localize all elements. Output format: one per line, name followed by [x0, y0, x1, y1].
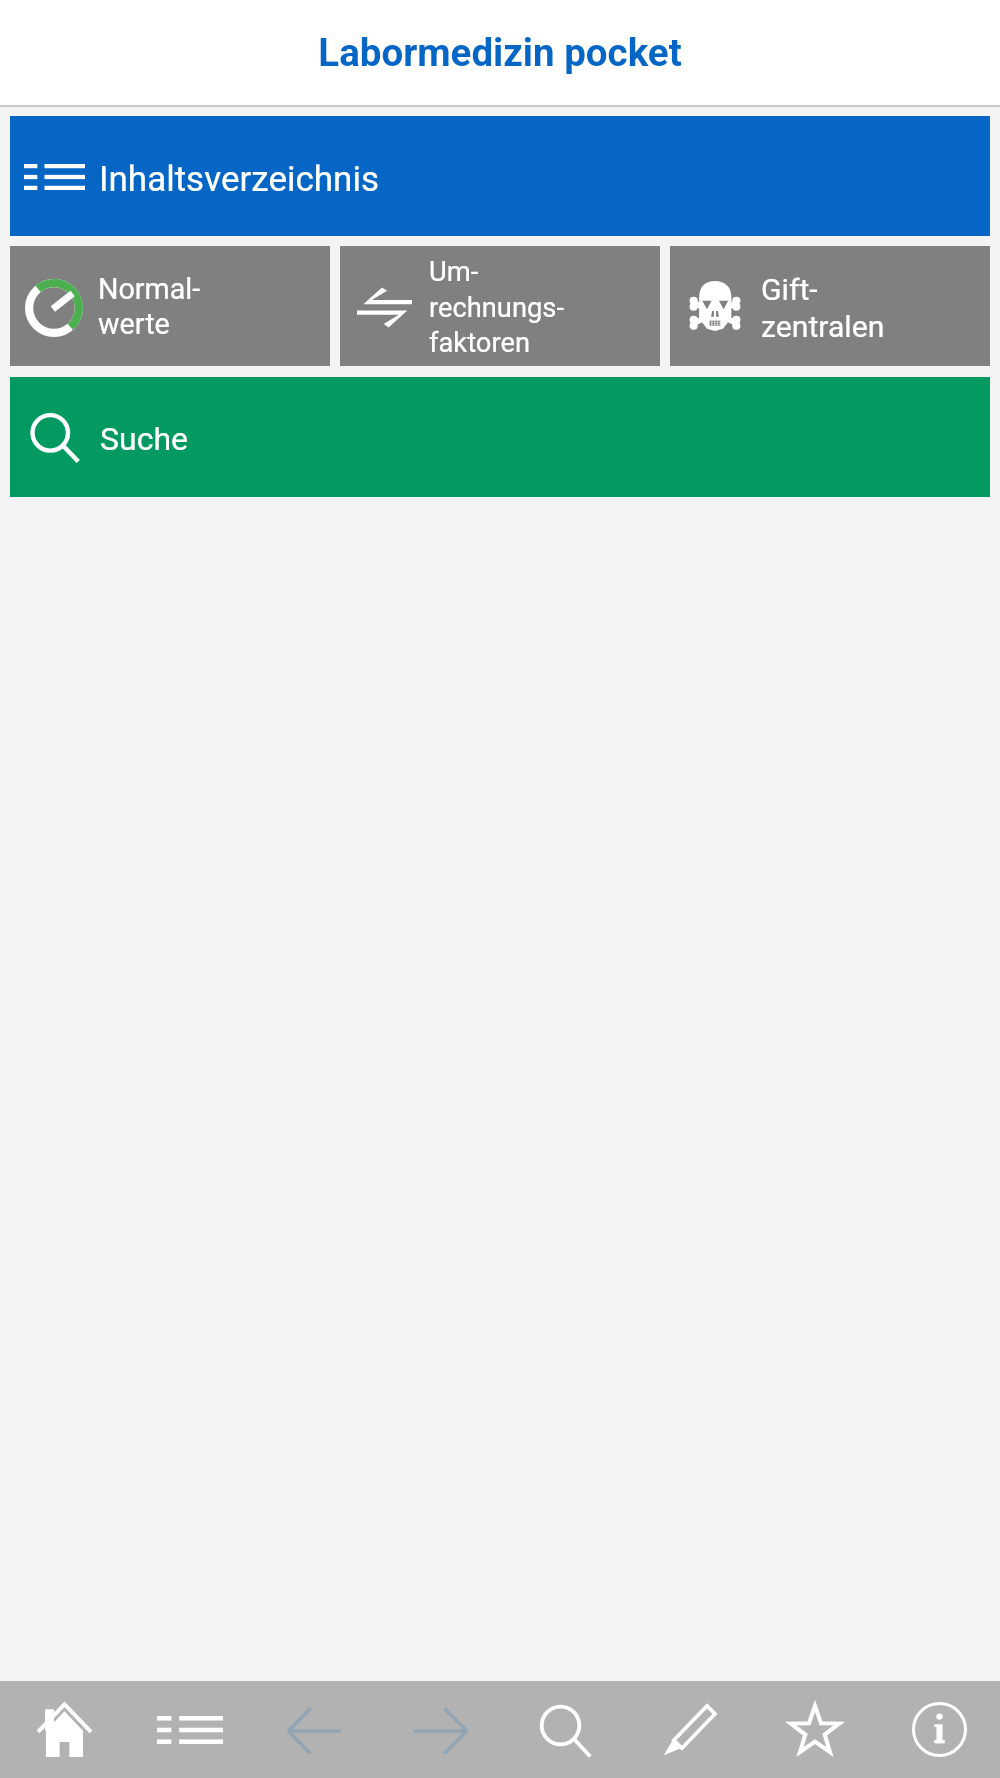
- staticText: Gift- zentralen: [761, 272, 885, 345]
- button[interactable]: Inhaltsverzeichnis: [10, 116, 990, 236]
- button[interactable]: Suche: [10, 377, 990, 497]
- button[interactable]: Um- rechnungs- faktoren: [340, 246, 660, 366]
- button[interactable]: Table of contents: [125, 1681, 250, 1778]
- button[interactable]: Gift- zentralen: [670, 246, 990, 366]
- button[interactable]: Favorites: [750, 1681, 875, 1778]
- staticText: Normal- werte: [98, 272, 201, 341]
- button[interactable]: Forward: [375, 1681, 500, 1778]
- button[interactable]: Info: [875, 1681, 1000, 1778]
- staticText: Um- rechnungs- faktoren: [429, 256, 564, 358]
- button[interactable]: Back: [250, 1681, 375, 1778]
- button[interactable]: Normal- werte: [10, 246, 330, 366]
- button[interactable]: Home: [0, 1681, 125, 1778]
- staticText: Suche: [100, 420, 188, 458]
- button[interactable]: Edit: [625, 1681, 750, 1778]
- staticText: Labormedizin pocket: [318, 30, 682, 75]
- button[interactable]: Search: [500, 1681, 625, 1778]
- staticText: Inhaltsverzeichnis: [99, 159, 379, 200]
